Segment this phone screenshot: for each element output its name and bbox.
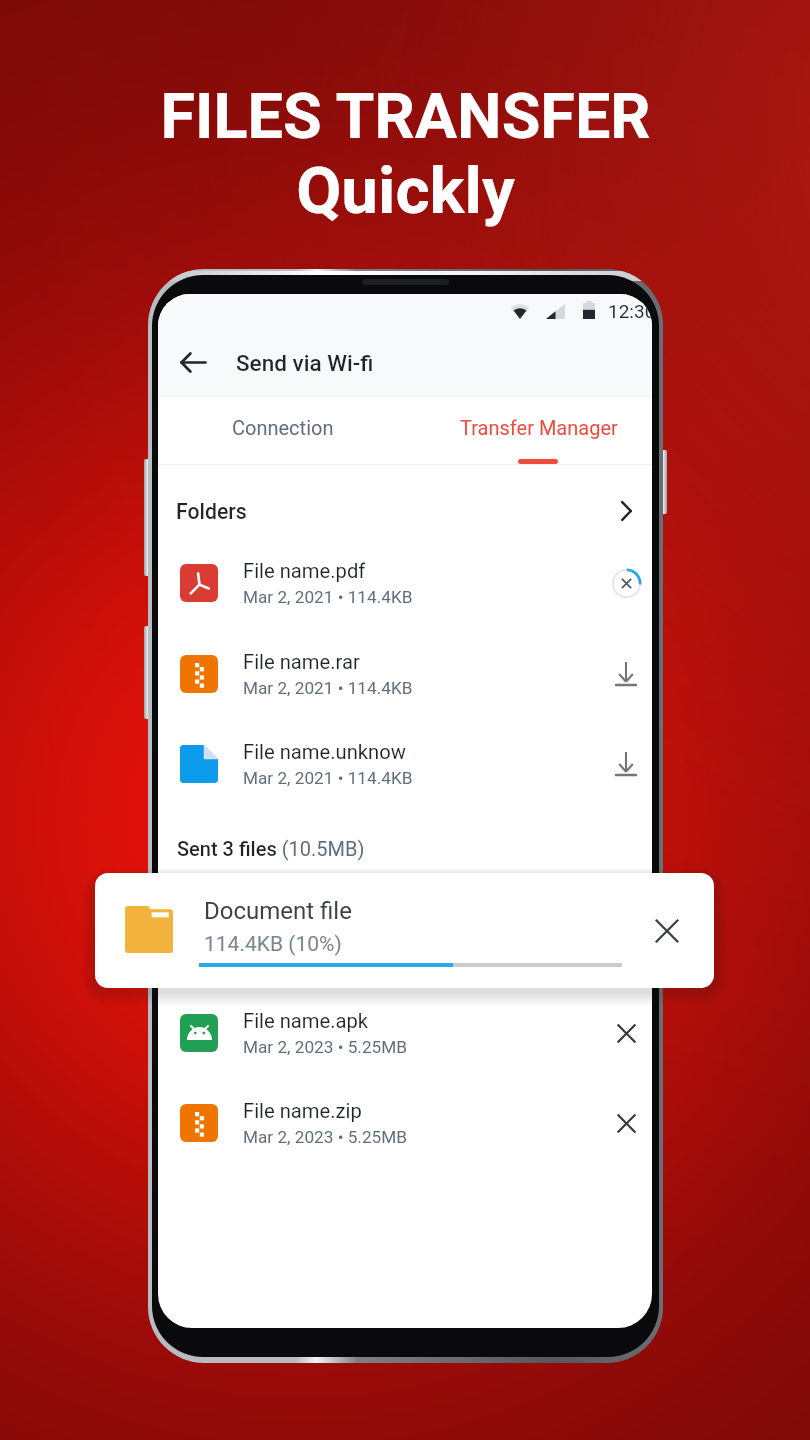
staticText: File name.apk (243, 1009, 369, 1033)
button[interactable]: Download (604, 652, 648, 696)
button[interactable]: Transfer Manager (405, 397, 652, 464)
button[interactable]: Close (644, 908, 690, 954)
button[interactable]: Back (179, 340, 206, 384)
button[interactable]: File name.rar (158, 629, 652, 719)
staticText: Connection (232, 416, 334, 439)
button[interactable]: Cancel transfer (604, 561, 648, 605)
staticText: Mar 2, 2021 • 114.4KB (243, 587, 413, 607)
staticText: Folders (176, 499, 247, 524)
staticText: Send via Wi-fi (236, 350, 374, 376)
staticText: Mar 2, 2021 • 114.4KB (243, 678, 413, 698)
staticText: Document file (204, 897, 352, 925)
button[interactable]: Download (604, 742, 648, 786)
button[interactable]: Connection (158, 397, 405, 464)
button[interactable]: Folders (158, 480, 652, 542)
staticText: Sent 3 files (10.5MB) (177, 837, 365, 860)
staticText: Quickly (296, 152, 515, 229)
button[interactable]: Remove (604, 1011, 648, 1055)
staticText: Mar 2, 2021 • 114.4KB (243, 768, 413, 788)
button[interactable]: Remove (604, 1101, 648, 1145)
button[interactable]: File name.zip (158, 1078, 652, 1168)
staticText: FILES TRANSFER (160, 80, 651, 154)
staticText: File name.pdf (243, 559, 366, 583)
staticText: Transfer Manager (460, 416, 618, 439)
staticText: File name.rar (243, 650, 360, 674)
staticText: Mar 2, 2023 • 5.25MB (243, 1037, 407, 1057)
staticText: 114.4KB (10%) (204, 932, 342, 957)
button[interactable]: File name.apk (158, 988, 652, 1078)
staticText: Mar 2, 2023 • 5.25MB (243, 1127, 407, 1147)
button[interactable]: File name.pdf (158, 538, 652, 628)
staticText: File name.zip (243, 1099, 362, 1123)
staticText: File name.unknow (243, 740, 406, 764)
button[interactable]: File name.unknow (158, 719, 652, 809)
staticText: 12:30 (608, 300, 652, 322)
button[interactable]: Document file (95, 873, 714, 988)
